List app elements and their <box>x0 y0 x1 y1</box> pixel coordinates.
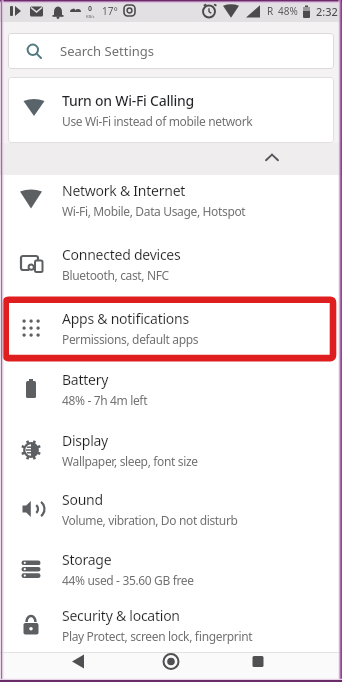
staticText: Search Settings <box>60 42 154 60</box>
button[interactable] <box>114 652 228 682</box>
staticText: Wi-Fi, Mobile, Data Usage, Hotspot <box>62 203 246 219</box>
staticText: Use Wi-Fi instead of mobile network <box>62 113 253 129</box>
button[interactable]: Network & Internet <box>0 170 342 230</box>
staticText: Bluetooth, cast, NFC <box>62 267 169 283</box>
staticText: Storage <box>62 550 112 569</box>
button[interactable]: Connected devices <box>0 234 342 294</box>
staticText: Sound <box>62 490 103 509</box>
staticText: Network & Internet <box>62 181 186 200</box>
staticText: KB/s <box>86 14 95 19</box>
button[interactable] <box>0 652 114 682</box>
button[interactable] <box>0 143 342 175</box>
staticText: Permissions, default apps <box>62 331 199 347</box>
button[interactable]: Turn on Wi-Fi Calling <box>8 77 334 143</box>
staticText: Play Protect, screen lock, fingerprint <box>62 628 253 644</box>
staticText: 2:32 <box>316 4 338 19</box>
button[interactable]: Display <box>0 420 342 480</box>
staticText: Turn on Wi-Fi Calling <box>62 91 194 110</box>
button[interactable] <box>228 652 342 682</box>
staticText: 48% <box>278 4 298 18</box>
button[interactable]: Battery <box>0 359 342 419</box>
button[interactable]: Storage <box>0 539 342 599</box>
staticText: 17° <box>102 4 118 18</box>
staticText: R <box>267 4 274 18</box>
staticText: 48% - 7h 4m left <box>62 392 148 408</box>
staticText: Connected devices <box>62 245 181 264</box>
staticText: 0 <box>88 4 93 14</box>
button[interactable]: Sound <box>0 479 342 539</box>
staticText: Display <box>62 431 109 450</box>
staticText: Wallpaper, sleep, font size <box>62 453 198 469</box>
staticText: Apps & notifications <box>62 309 189 328</box>
staticText: Security & location <box>62 606 180 625</box>
staticText: Battery <box>62 370 109 389</box>
button[interactable]: Apps & notifications <box>0 298 342 358</box>
staticText: 44% used - 35.60 GB free <box>62 572 194 588</box>
staticText: Volume, vibration, Do not disturb <box>62 512 238 528</box>
button[interactable]: Search Settings <box>8 33 334 69</box>
button[interactable]: Security & location <box>0 595 342 655</box>
